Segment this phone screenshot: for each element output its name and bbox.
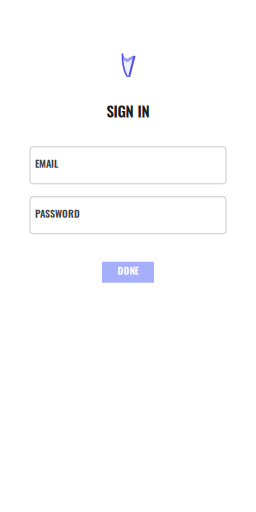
button[interactable]: DONE [102,262,154,283]
button[interactable]: EMAIL [30,147,226,184]
staticText: DONE [117,263,138,277]
staticText: EMAIL [35,156,58,171]
staticText: SIGN IN [106,100,149,122]
button[interactable]: PASSWORD [30,197,226,234]
staticText: PASSWORD [35,206,80,221]
